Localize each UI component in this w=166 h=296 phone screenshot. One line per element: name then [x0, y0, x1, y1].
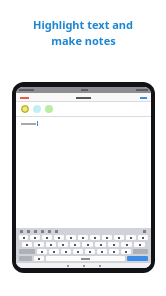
button[interactable]: Key	[49, 249, 59, 254]
button[interactable]: Key	[138, 235, 148, 240]
button[interactable]: Key	[108, 242, 119, 247]
button[interactable]: Format tool 1	[20, 230, 23, 233]
button[interactable]: Key	[127, 256, 148, 261]
button[interactable]: Space	[46, 256, 125, 261]
button[interactable]: Key	[73, 249, 83, 254]
button[interactable]: Key	[34, 242, 44, 247]
button[interactable]: Key	[126, 235, 136, 240]
button[interactable]: Key	[46, 242, 56, 247]
button[interactable]: Key	[70, 242, 80, 247]
button[interactable]: Key	[37, 249, 47, 254]
button[interactable]: Key	[61, 249, 71, 254]
button[interactable]: Format tool 5	[48, 230, 51, 233]
button[interactable]: Format tool 3	[34, 230, 37, 233]
button[interactable]: Key	[22, 242, 32, 247]
button[interactable]: Key	[90, 235, 100, 240]
staticText: make notes	[51, 33, 116, 48]
button[interactable]: Key	[34, 256, 44, 261]
button[interactable]: Highlight colour	[33, 105, 41, 113]
button[interactable]: Key	[78, 235, 88, 240]
button[interactable]: Key	[30, 235, 40, 240]
button[interactable]: Key	[102, 235, 112, 240]
button[interactable]: Key	[85, 249, 95, 254]
button[interactable]: Highlight colour	[45, 105, 53, 113]
button[interactable]: Format tool 6	[55, 230, 58, 233]
button[interactable]: Key	[58, 242, 68, 247]
staticText: Highlight text and	[33, 17, 133, 32]
button[interactable]: Highlight colour	[21, 105, 29, 113]
button[interactable]: Key	[109, 249, 119, 254]
button[interactable]: Key	[54, 235, 64, 240]
button[interactable]: Format tool 4	[41, 230, 44, 233]
button[interactable]: Key	[114, 235, 124, 240]
button[interactable]: Key	[121, 242, 132, 247]
button[interactable]: Key	[42, 235, 52, 240]
button[interactable]: Key	[66, 235, 76, 240]
button[interactable]: Key	[134, 242, 145, 247]
button[interactable]: Key	[95, 242, 106, 247]
button[interactable]: Key	[121, 249, 131, 254]
button[interactable]: Format tool 2	[27, 230, 30, 233]
button[interactable]: Key	[82, 242, 93, 247]
button[interactable]: Key	[97, 249, 107, 254]
button[interactable]: Key	[19, 235, 28, 240]
